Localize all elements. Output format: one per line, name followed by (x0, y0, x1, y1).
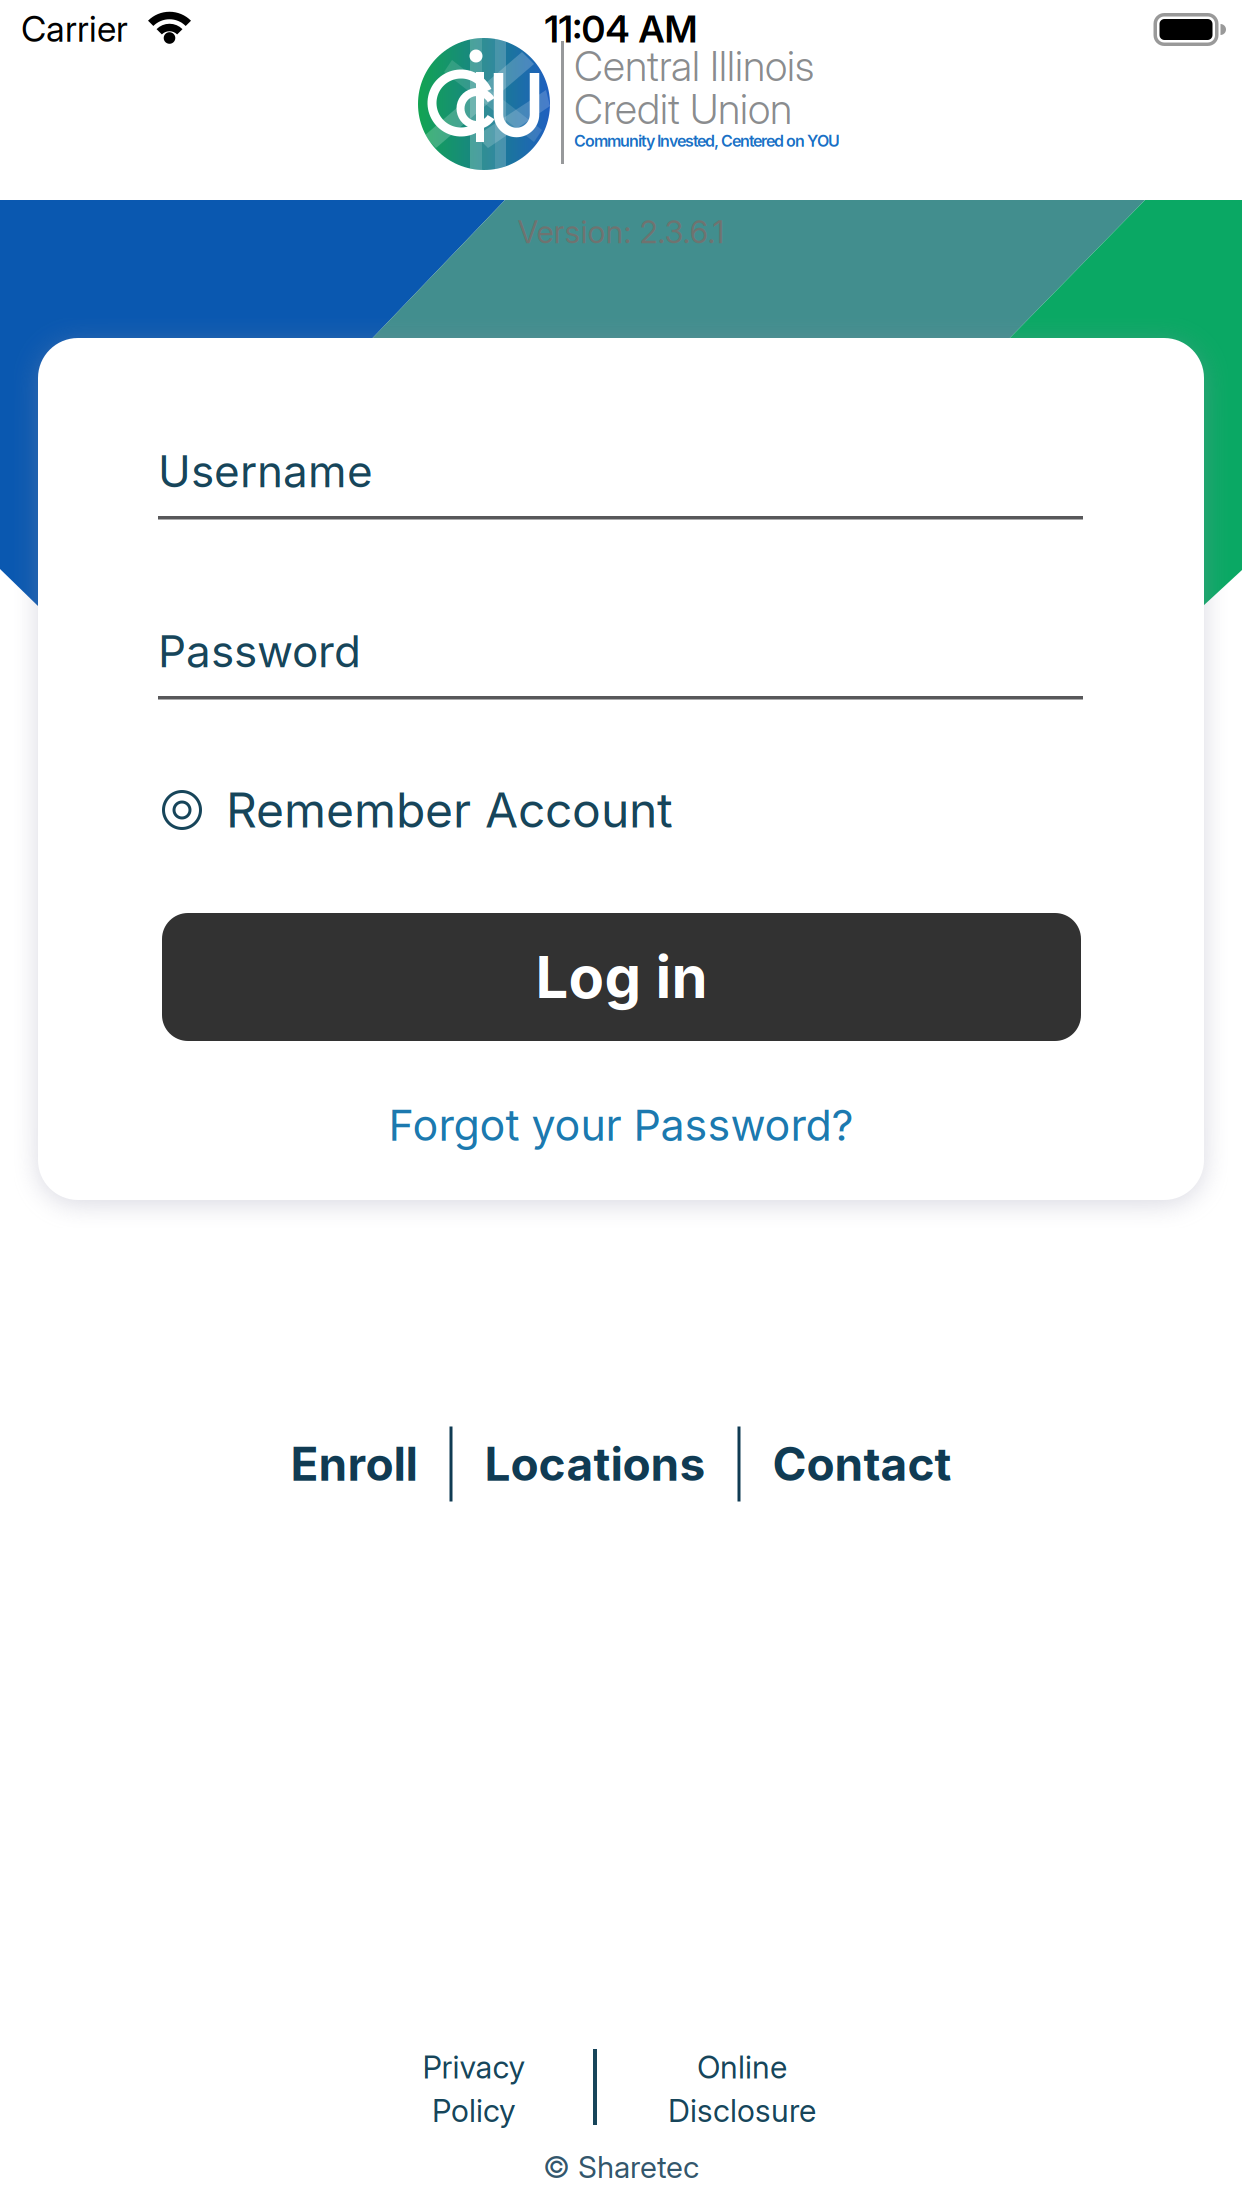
button[interactable]: Forgot your Password? (388, 1099, 853, 1151)
staticText: © Sharetec (543, 2149, 699, 2185)
staticText: Contact (772, 1436, 951, 1492)
staticText: Log in (535, 942, 707, 1012)
button[interactable]: Privacy (422, 2048, 525, 2129)
staticText: Locations (484, 1436, 705, 1492)
staticText: Online (697, 2048, 787, 2086)
button[interactable]: Contact (772, 1436, 951, 1492)
staticText: Central Illinois (574, 41, 814, 91)
button[interactable]: Password (158, 624, 1083, 699)
staticText: Privacy (422, 2048, 525, 2086)
button[interactable]: Online (668, 2048, 816, 2129)
staticText: Forgot your Password? (388, 1099, 853, 1151)
staticText: Enroll (290, 1436, 417, 1492)
staticText: Version: 2.3.6.1 (517, 213, 724, 251)
staticText: Community Invested, Centered on YOU (574, 131, 840, 151)
staticText: Password (158, 624, 361, 678)
staticText: Disclosure (668, 2092, 816, 2129)
staticText: Username (158, 444, 373, 498)
staticText: Policy (432, 2092, 516, 2129)
button[interactable]: Locations (484, 1436, 705, 1492)
button[interactable]: Enroll (290, 1436, 417, 1492)
staticText: Carrier (21, 8, 128, 50)
staticText: Remember Account (226, 781, 673, 839)
button[interactable]: Username (158, 444, 1083, 519)
staticText: 11:04 AM (544, 7, 697, 51)
staticText: Credit Union (574, 84, 792, 134)
button[interactable]: Remember Account (162, 781, 862, 839)
button[interactable]: Log in (162, 913, 1081, 1041)
